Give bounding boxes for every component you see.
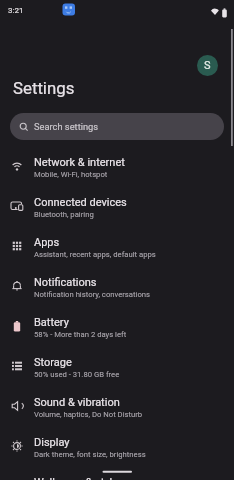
staticText: Connected devices [34,196,127,209]
staticText: Bluetooth, pairing [34,210,94,219]
button[interactable]: Battery [0,306,234,346]
button[interactable]: Storage [0,346,234,386]
staticText: Notifications [34,276,97,289]
button[interactable]: Notifications [0,266,234,306]
staticText: Sound & vibration [34,396,120,409]
staticText: Battery [34,316,69,329]
button[interactable]: Network & internet [0,146,234,186]
staticText: Network & internet [34,156,125,169]
staticText: Mobile, Wi-Fi, hotspot [34,170,108,179]
staticText: Volume, haptics, Do Not Disturb [34,410,143,419]
button[interactable]: Wallpaper & style [0,466,234,480]
button[interactable]: Display [0,426,234,466]
button[interactable]: S [197,55,218,76]
staticText: Assistant, recent apps, default apps [34,250,156,259]
button[interactable]: Apps [0,226,234,266]
staticText: Apps [34,236,60,249]
staticText: 58% - More than 2 days left [34,330,127,339]
button[interactable]: Connected devices [0,186,234,226]
button[interactable]: Search settings [10,113,224,140]
staticText: S [204,59,211,72]
staticText: Settings [13,78,75,98]
staticText: Display [34,436,70,449]
button[interactable]: Sound & vibration [0,386,234,426]
staticText: Search settings [34,121,99,132]
staticText: Wallpaper & style [34,476,119,480]
staticText: Storage [34,356,72,369]
staticText: Dark theme, font size, brightness [34,450,146,459]
staticText: 3:21 [8,6,24,15]
staticText: Notification history, conversations [34,290,151,299]
staticText: 50% used - 31.80 GB free [34,370,120,379]
